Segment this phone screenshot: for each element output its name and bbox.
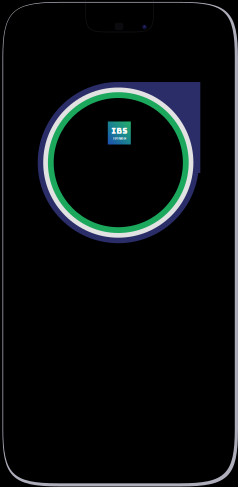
- staticText: IBS: [111, 125, 127, 136]
- staticText: Certification: [113, 136, 126, 140]
